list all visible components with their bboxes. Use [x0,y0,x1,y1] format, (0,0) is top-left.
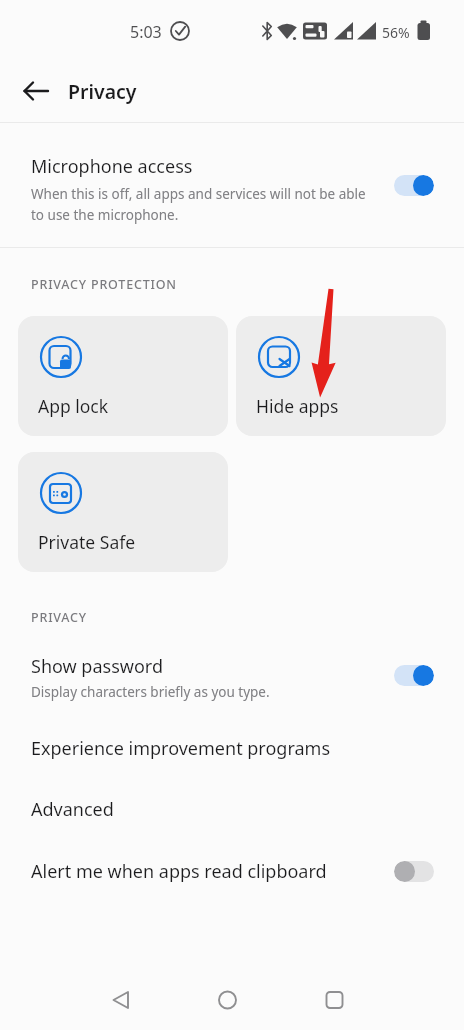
button[interactable]: Show password [0,652,464,717]
staticText: Microphone access [31,154,193,179]
button[interactable] [394,861,434,882]
button[interactable]: Experience improvement programs [0,717,464,779]
staticText: Experience improvement programs [31,736,331,761]
staticText: Hide apps [256,394,339,418]
staticText: App lock [38,394,109,418]
button[interactable] [12,67,60,115]
button[interactable] [309,972,464,1030]
button[interactable]: App lock [18,316,228,436]
staticText: Show password [31,654,163,679]
staticText: Advanced [31,797,114,822]
staticText: 56% [382,23,410,42]
staticText: Privacy [68,78,137,105]
staticText: Display characters briefly as you type. [31,683,270,701]
staticText: Alert me when apps read clipboard [31,859,327,884]
button[interactable] [0,972,154,1030]
button[interactable] [154,972,309,1030]
button[interactable]: Alert me when apps read clipboard [0,840,464,902]
button[interactable] [394,175,434,196]
button[interactable]: Private Safe [18,452,228,572]
button[interactable]: Microphone access [0,123,464,247]
button[interactable]: Hide apps [236,316,446,436]
staticText: PRIVACY PROTECTION [31,276,177,293]
button[interactable]: Advanced [0,779,464,840]
staticText: Private Safe [38,530,136,554]
staticText: 5:03 [130,21,162,43]
staticText: PRIVACY [31,609,87,626]
staticText: When this is off, all apps and services … [31,185,366,224]
button[interactable] [394,665,434,686]
